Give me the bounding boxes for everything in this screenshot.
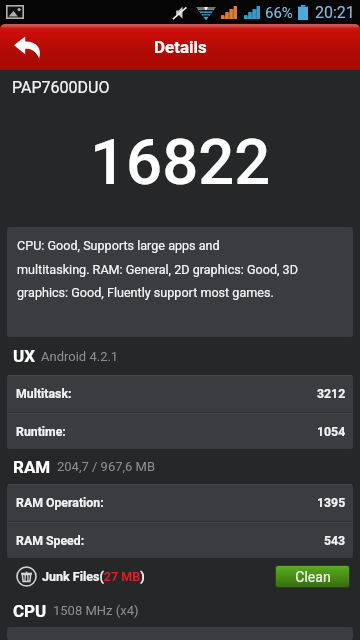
staticText: 1508 MHz (x4)	[53, 603, 139, 618]
staticText: 1054	[317, 425, 346, 439]
staticText: Details	[154, 37, 207, 57]
staticText: RAM Speed:	[16, 534, 85, 548]
button[interactable]: Runtime:	[7, 414, 353, 449]
button[interactable]: Clean	[276, 566, 349, 587]
staticText: Junk Files(27 MB)	[42, 569, 145, 584]
button[interactable]: RAM Operation:	[7, 484, 353, 521]
staticText: 3212	[317, 387, 346, 401]
staticText: Android 4.2.1	[41, 349, 119, 364]
button[interactable]: Junk Files(27 MB)	[0, 558, 360, 594]
staticText: RAM	[13, 457, 51, 477]
staticText: Multitask:	[16, 387, 72, 401]
staticText: UX	[13, 346, 35, 366]
staticText: CPU	[13, 601, 47, 621]
staticText: 543	[324, 534, 346, 548]
staticText: RAM Operation:	[16, 496, 104, 510]
staticText: 1395	[317, 496, 346, 510]
staticText: Runtime:	[16, 425, 66, 439]
staticText: 16822	[90, 125, 271, 199]
staticText: 20:21	[315, 3, 355, 22]
staticText: CPU: Good, Supports large apps and multi…	[17, 238, 298, 300]
staticText: 204,7 / 967,6 MB	[57, 459, 156, 474]
staticText: PAP7600DUO	[12, 78, 110, 97]
staticText: 66%	[265, 4, 293, 22]
button[interactable]: RAM Speed:	[7, 523, 353, 558]
button[interactable]: Multitask:	[7, 375, 353, 412]
staticText: Clean	[295, 569, 331, 585]
button[interactable]: Back	[0, 24, 56, 70]
